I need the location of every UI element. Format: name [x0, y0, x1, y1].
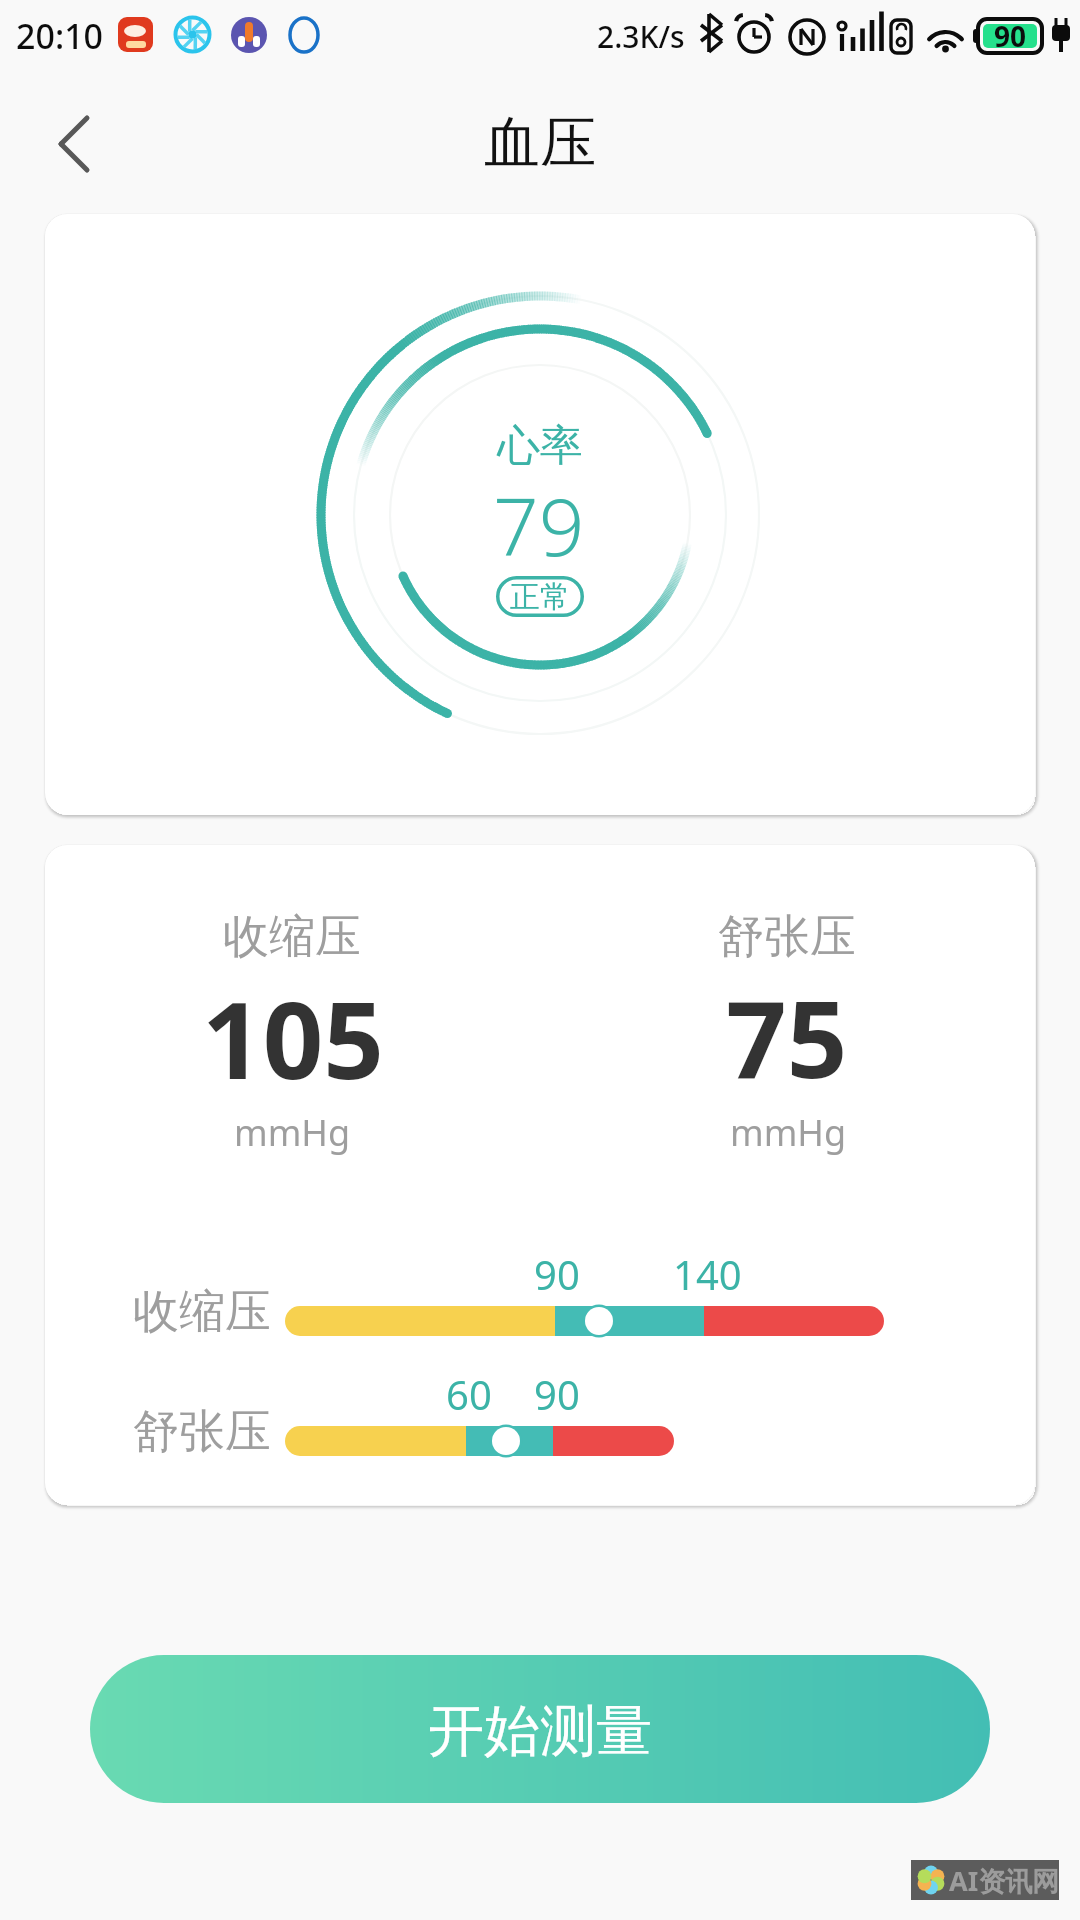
- staticText: 收缩压: [223, 908, 361, 966]
- staticText: 血压: [484, 108, 596, 179]
- staticText: 75: [726, 965, 848, 1109]
- staticText: 90: [994, 17, 1027, 55]
- staticText: mmHg: [730, 1108, 847, 1157]
- staticText: 79: [493, 470, 585, 579]
- button[interactable]: 开始测量: [90, 1655, 990, 1803]
- staticText: 90: [534, 1247, 580, 1301]
- staticText: 140: [673, 1247, 742, 1301]
- staticText: AI资讯网: [949, 1862, 1060, 1899]
- staticText: 正常: [510, 578, 570, 616]
- staticText: 20:10: [16, 13, 104, 59]
- staticText: 2.3K/s: [597, 16, 685, 57]
- staticText: 60: [446, 1367, 492, 1421]
- staticText: 开始测量: [428, 1696, 652, 1767]
- staticText: 舒张压: [718, 908, 856, 966]
- staticText: 舒张压: [133, 1403, 271, 1461]
- button[interactable]: Back: [22, 105, 102, 183]
- staticText: 收缩压: [133, 1283, 271, 1341]
- staticText: 105: [202, 966, 384, 1110]
- staticText: 90: [534, 1367, 580, 1421]
- staticText: 心率: [497, 419, 583, 473]
- staticText: mmHg: [234, 1108, 351, 1157]
